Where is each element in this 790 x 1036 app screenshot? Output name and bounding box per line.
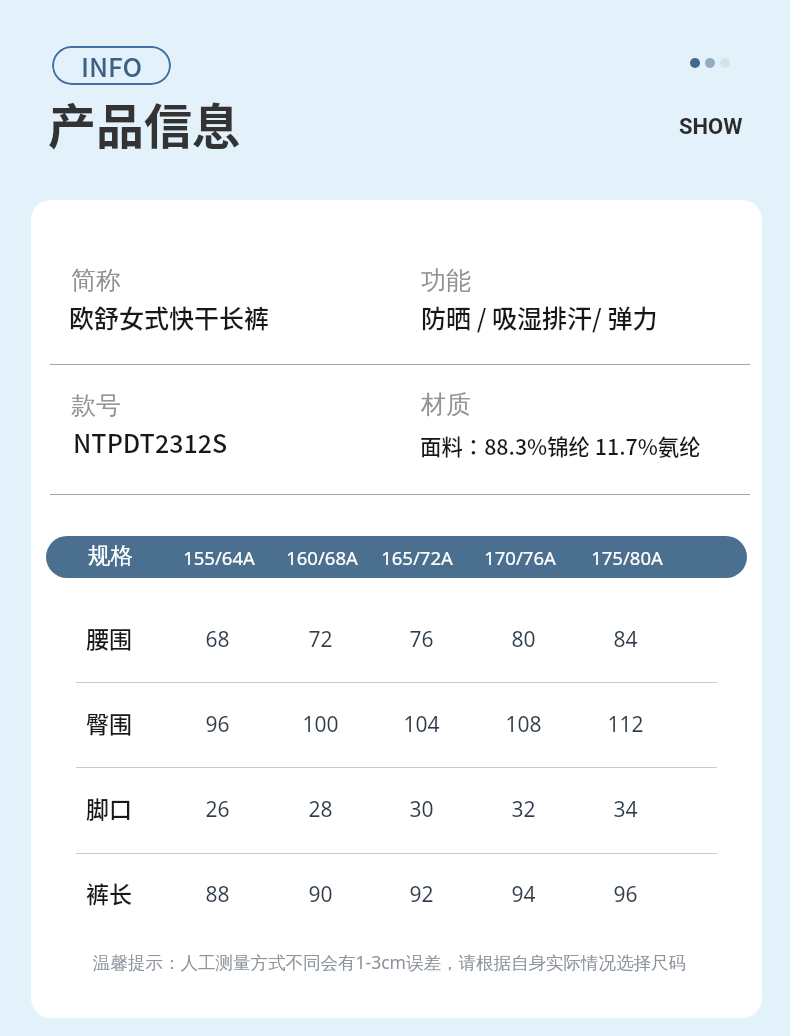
button[interactable]: [46, 597, 747, 682]
staticText: 76: [409, 625, 434, 654]
staticText: 72: [308, 625, 333, 654]
button[interactable]: SHOW: [679, 114, 743, 140]
button[interactable]: INFO: [52, 46, 171, 85]
staticText: 臀围: [86, 706, 132, 739]
button[interactable]: [46, 852, 747, 937]
staticText: 30: [409, 795, 434, 824]
staticText: 80: [511, 625, 536, 654]
staticText: 28: [308, 795, 333, 824]
staticText: 欧舒女式快干长裤: [69, 299, 270, 335]
staticText: 腰围: [86, 621, 132, 654]
staticText: 规格: [88, 541, 133, 569]
staticText: 34: [613, 795, 638, 824]
staticText: 165/72A: [381, 545, 453, 570]
staticText: 款号: [71, 390, 121, 421]
staticText: 产品信息: [48, 88, 241, 158]
staticText: SHOW: [679, 114, 743, 140]
staticText: 防晒 / 吸湿排汗/ 弹力: [421, 299, 658, 335]
button[interactable]: Page indicator, page 1 of 3: [690, 58, 730, 68]
staticText: INFO: [81, 47, 143, 85]
staticText: 175/80A: [591, 545, 663, 570]
button[interactable]: [46, 536, 747, 578]
staticText: 94: [511, 880, 536, 909]
button[interactable]: [46, 682, 747, 767]
staticText: 100: [302, 710, 339, 739]
staticText: 功能: [421, 265, 471, 296]
staticText: 170/76A: [484, 545, 556, 570]
staticText: 160/68A: [286, 545, 358, 570]
staticText: 108: [505, 710, 542, 739]
staticText: 90: [308, 880, 333, 909]
staticText: 96: [613, 880, 638, 909]
staticText: 温馨提示：人工测量方式不同会有1-3cm误差，请根据自身实际情况选择尺码: [93, 950, 686, 974]
button[interactable]: [46, 767, 747, 852]
staticText: 96: [205, 710, 230, 739]
staticText: 简称: [71, 265, 121, 296]
staticText: 68: [205, 625, 230, 654]
staticText: 材质: [421, 389, 471, 420]
staticText: NTPDT2312S: [73, 424, 228, 460]
staticText: 84: [613, 625, 638, 654]
staticText: 裤长: [86, 876, 132, 909]
staticText: 脚口: [86, 791, 132, 824]
staticText: 104: [403, 710, 440, 739]
staticText: 112: [607, 710, 644, 739]
staticText: 88: [205, 880, 230, 909]
staticText: 155/64A: [183, 545, 255, 570]
staticText: 92: [409, 880, 434, 909]
staticText: 面料：88.3%锦纶 11.7%氨纶: [420, 430, 701, 461]
staticText: 32: [511, 795, 536, 824]
staticText: 26: [205, 795, 230, 824]
